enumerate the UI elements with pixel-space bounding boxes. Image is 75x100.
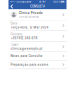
staticText: Clínica Privada — [19, 11, 43, 15]
button[interactable]: Preparação para exame — [8, 61, 66, 69]
button[interactable]: Data — [8, 20, 66, 31]
staticText: Data — [11, 22, 18, 25]
staticText: 100% — [53, 0, 60, 3]
staticText: 9:41 — [39, 0, 45, 3]
staticText: CONSULTA — [30, 5, 45, 8]
staticText: Email — [11, 43, 19, 46]
staticText: +351 912 345 678 — [11, 36, 38, 40]
staticText: Terça-feira, 12 Mar 2024 — [11, 26, 49, 29]
button[interactable]: Contato — [8, 31, 66, 42]
staticText: Consulta Geral — [19, 15, 39, 18]
button[interactable]: Clínica Privada — [8, 9, 66, 20]
staticText: Notas para Consulta — [11, 54, 43, 58]
button[interactable]: Email — [8, 42, 66, 51]
staticText: Contato — [11, 32, 23, 36]
staticText: Preparação para exame — [11, 63, 49, 66]
button[interactable]: Back — [8, 4, 16, 9]
button[interactable]: Notas para Consulta — [8, 52, 66, 60]
staticText: Vodafone — [16, 0, 28, 3]
staticText: clinica@exemplo.pt — [11, 47, 43, 50]
